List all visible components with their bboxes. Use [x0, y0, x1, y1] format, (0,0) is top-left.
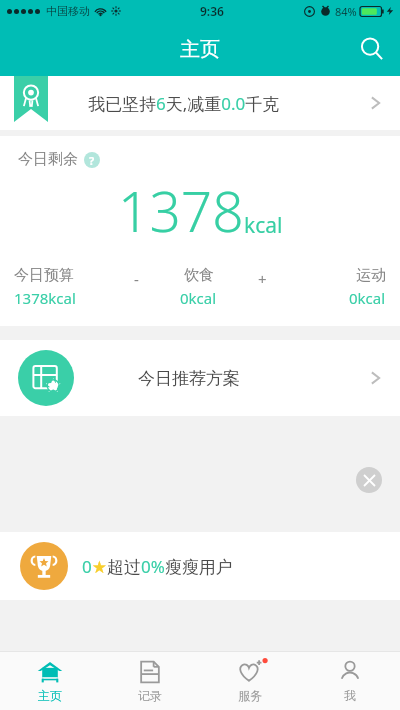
staticText: 0kcal	[180, 288, 217, 308]
staticText: 饮食	[184, 266, 214, 285]
staticText: 主页	[180, 37, 220, 62]
staticText: 9:36	[200, 3, 224, 19]
staticText: kcal	[244, 211, 283, 240]
staticText: 运动	[356, 266, 386, 285]
button[interactable]: 今日推荐方案	[0, 340, 400, 416]
staticText: 84%	[335, 4, 357, 19]
button[interactable]: 我	[300, 652, 400, 710]
staticText: 主页	[38, 688, 62, 703]
button[interactable]: 记录	[100, 652, 200, 710]
staticText: 0★超过0%瘦瘦用户	[82, 555, 233, 578]
staticText: 今日预算	[14, 266, 74, 285]
staticText: 我已坚持6天,减重0.0千克	[88, 92, 280, 115]
staticText: 我	[344, 688, 356, 703]
staticText: -	[134, 269, 139, 289]
button[interactable]: Help	[84, 152, 100, 168]
button[interactable]: 我已坚持6天,减重0.0千克	[0, 76, 400, 130]
button[interactable]: Search	[344, 22, 400, 76]
staticText: +	[258, 269, 267, 289]
staticText: 今日剩余	[18, 150, 78, 169]
button[interactable]: Close ad	[356, 467, 382, 493]
staticText: 今日推荐方案	[138, 368, 240, 389]
staticText: 服务	[238, 688, 262, 703]
button[interactable]: 主页	[0, 652, 100, 710]
staticText: 记录	[138, 688, 162, 703]
staticText: 0kcal	[349, 288, 386, 308]
staticText: 1378kcal	[14, 288, 76, 308]
button[interactable]: 0★超过0%瘦瘦用户	[0, 532, 400, 600]
staticText: 中国移动	[46, 4, 90, 18]
staticText: ?	[89, 153, 95, 168]
staticText: 1378	[118, 173, 244, 248]
button[interactable]: 服务	[200, 652, 300, 710]
